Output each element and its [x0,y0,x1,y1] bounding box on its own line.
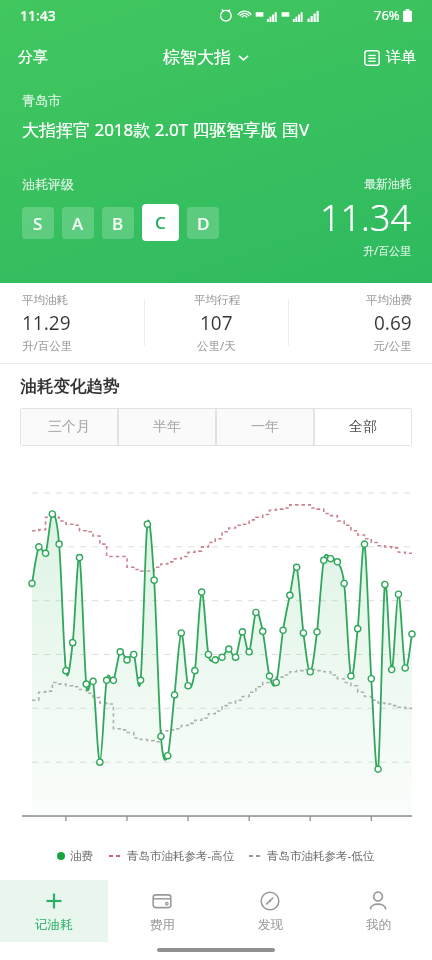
staticText: 76% [374,6,400,24]
other: 发现 [259,890,281,912]
staticText: 油费 [70,849,93,863]
button[interactable]: A [62,207,94,239]
other: 我的 [367,890,389,912]
staticText: B [112,212,124,235]
staticText: 分享 [18,48,48,67]
staticText: 详单 [386,48,416,67]
staticText: 全部 [349,418,377,436]
button[interactable]: 费用 [108,880,216,942]
staticText: D [197,212,210,235]
staticText: S [33,212,43,235]
button[interactable]: S [22,207,54,239]
staticText: 公里/天 [197,338,236,354]
staticText: C [155,211,166,234]
staticText: 一年 [251,418,279,436]
staticText: 发现 [258,917,283,933]
staticText: 半年 [153,418,181,436]
staticText: 青岛市油耗参考-高位 [127,848,235,864]
button[interactable]: 平均油耗 [0,293,144,354]
button[interactable]: 详单 [356,42,432,73]
button[interactable]: 平均行程 [145,293,288,354]
staticText: 平均油费 [366,293,412,307]
staticText: A [72,212,84,235]
staticText: 升/百公里 [363,243,412,258]
staticText: 三个月 [48,418,90,436]
button[interactable]: B [102,207,134,239]
button[interactable]: 发现 [216,880,324,942]
staticText: 最新油耗 [364,176,412,191]
button[interactable]: 棕智大指 [155,41,258,74]
other: 费用 [151,890,173,912]
staticText: 费用 [150,917,175,933]
staticText: 青岛市 [22,92,61,108]
other: 记油耗 [43,890,65,912]
button[interactable]: 我的 [324,880,432,942]
staticText: 棕智大指 [163,47,231,68]
staticText: 油耗变化趋势 [20,376,119,397]
button[interactable]: 全部 [315,409,411,445]
button[interactable]: 记油耗 [0,880,108,942]
staticText: 107 [200,310,233,336]
button[interactable]: 一年 [217,409,313,445]
staticText: 平均油耗 [22,293,68,307]
staticText: 油耗评级 [22,176,74,192]
staticText: 11.34 [320,193,412,242]
button[interactable]: 平均油费 [289,293,432,354]
staticText: 元/公里 [373,338,412,354]
staticText: 升/百公里 [22,338,73,354]
button[interactable]: 分享 [0,42,58,73]
staticText: 青岛市油耗参考-低位 [267,848,375,864]
staticText: 大指挥官 2018款 2.0T 四驱智享版 国V [22,118,310,141]
staticText: 我的 [366,917,391,933]
staticText: 0.69 [374,310,412,336]
button[interactable]: 半年 [119,409,215,445]
button[interactable]: 三个月 [21,409,117,445]
staticText: 记油耗 [35,917,73,933]
button[interactable]: D [187,207,219,239]
button[interactable]: C [142,204,179,241]
staticText: 平均行程 [194,293,240,307]
staticText: 11.29 [22,310,71,336]
staticText: 11:43 [20,6,56,25]
